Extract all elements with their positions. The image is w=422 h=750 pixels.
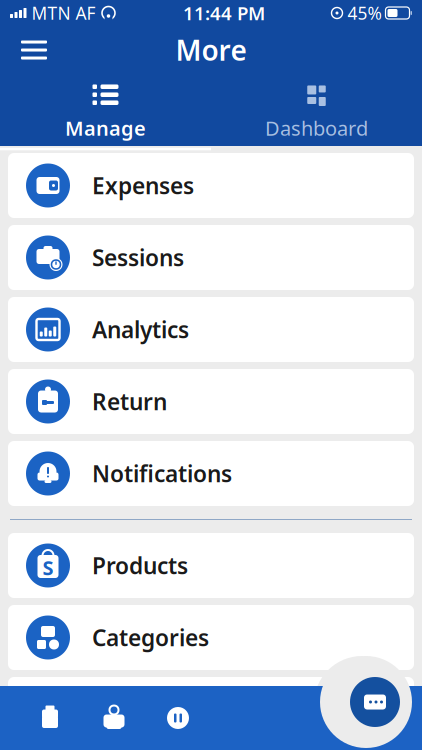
staticText: Analytics: [92, 314, 189, 344]
staticText: Manage: [65, 115, 146, 141]
button[interactable]: Dashboard: [211, 70, 422, 150]
button[interactable]: Messages: [350, 677, 400, 727]
button[interactable]: Manage: [0, 70, 211, 150]
staticText: MTN AF: [31, 1, 95, 24]
staticText: 11:44 PM: [183, 1, 265, 25]
staticText: Categories: [92, 622, 209, 652]
button[interactable]: Cart: [82, 686, 146, 750]
button[interactable]: Return: [8, 369, 414, 434]
button[interactable]: Sessions: [8, 225, 414, 290]
button[interactable]: Reports: [8, 677, 414, 742]
button[interactable]: Menu: [12, 28, 56, 72]
button[interactable]: Expenses: [8, 153, 414, 218]
staticText: S: [42, 554, 53, 581]
staticText: Reports: [92, 694, 178, 724]
staticText: Sessions: [92, 242, 184, 272]
staticText: Dashboard: [265, 115, 368, 141]
staticText: Notifications: [92, 458, 232, 488]
button[interactable]: Categories: [8, 605, 414, 670]
button[interactable]: Notifications: [8, 441, 414, 506]
button[interactable]: S: [8, 533, 414, 598]
staticText: More: [175, 31, 246, 69]
button[interactable]: Home: [18, 686, 82, 750]
staticText: Expenses: [92, 170, 194, 200]
staticText: 45%: [347, 1, 381, 24]
staticText: Return: [92, 386, 167, 416]
button[interactable]: Pause: [146, 686, 210, 750]
button[interactable]: Analytics: [8, 297, 414, 362]
staticText: Products: [92, 550, 188, 580]
